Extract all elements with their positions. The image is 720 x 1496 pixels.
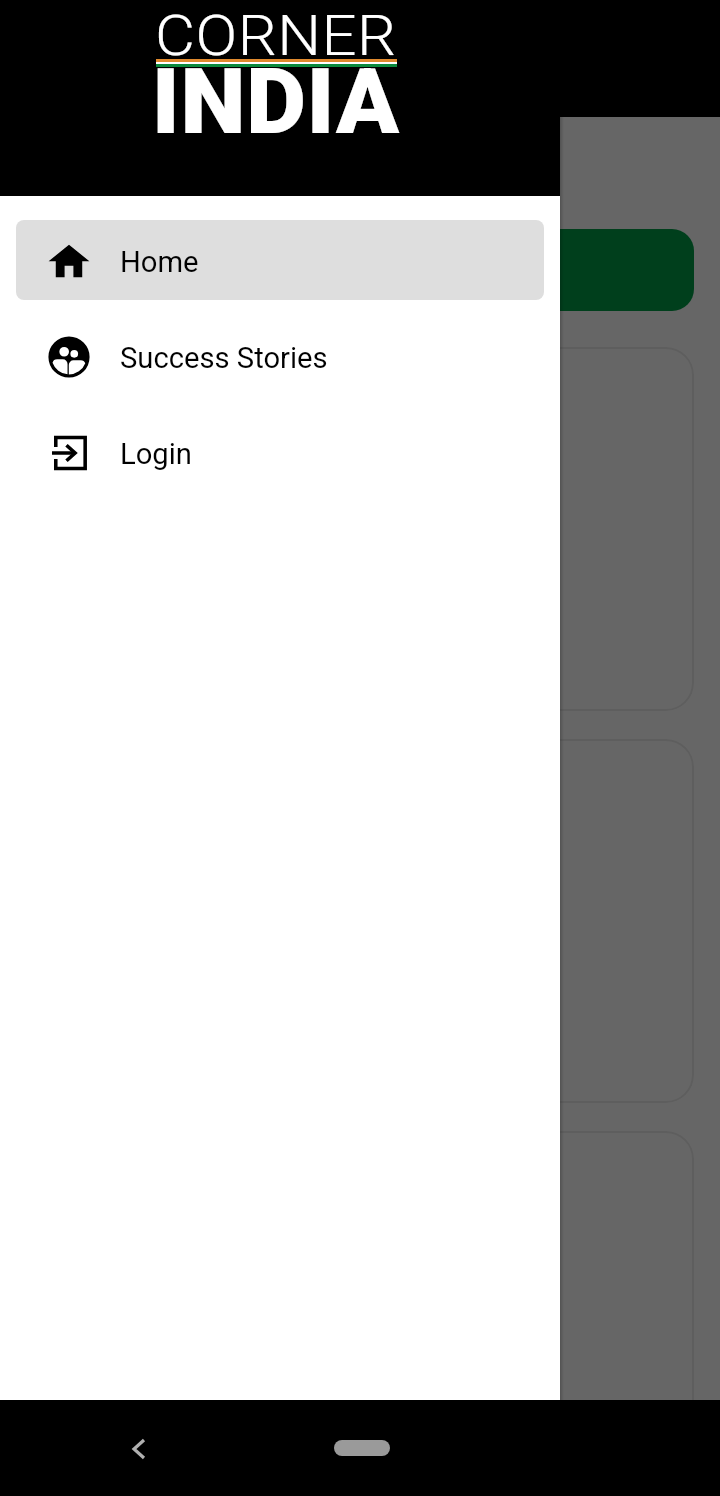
staticText: Login [120,437,192,471]
button[interactable]: Close navigation drawer [0,0,720,1496]
button[interactable]: Home [334,1440,390,1456]
button[interactable] [26,1131,694,1495]
staticText: INDIA [152,49,400,156]
staticText: Home [120,245,199,279]
button[interactable]: Home [16,220,544,300]
button[interactable]: Login [16,412,544,492]
staticText: Success Stories [120,341,328,375]
button[interactable] [26,229,694,311]
staticText: CORNER [155,4,397,68]
button[interactable]: Success Stories [16,316,544,396]
button[interactable] [26,347,694,711]
button[interactable]: Back [115,1424,163,1472]
button[interactable] [26,739,694,1103]
